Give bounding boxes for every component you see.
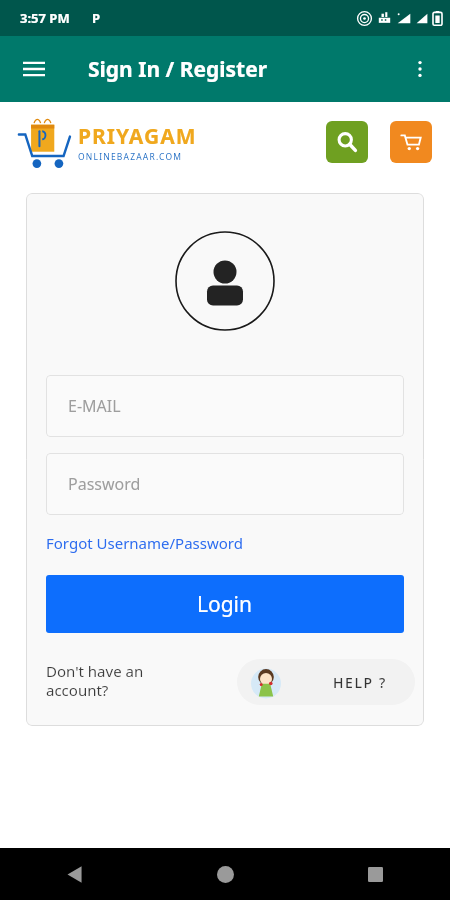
- button[interactable]: More options: [398, 47, 442, 91]
- button[interactable]: Create new Account: [263, 661, 404, 681]
- staticText: Sign In / Register: [88, 55, 268, 84]
- staticText: Password: [68, 473, 141, 495]
- staticText: E-MAIL: [68, 395, 121, 417]
- button[interactable]: Cart: [390, 121, 432, 163]
- button[interactable]: Search: [326, 121, 368, 163]
- button[interactable]: PRIYAGAM: [16, 115, 197, 169]
- staticText: 3:57 PM: [20, 9, 70, 27]
- button[interactable]: Recent apps: [300, 848, 450, 900]
- button[interactable]: Back: [0, 848, 150, 900]
- button[interactable]: HELP ?: [237, 659, 415, 705]
- button[interactable]: E-MAIL: [46, 375, 404, 437]
- staticText: P: [92, 9, 101, 27]
- staticText: ONLINEBAZAAR.COM: [78, 151, 183, 163]
- button[interactable]: Open navigation menu: [12, 47, 56, 91]
- button[interactable]: Login: [46, 575, 404, 633]
- button[interactable]: Home: [150, 848, 300, 900]
- staticText: Login: [197, 590, 253, 619]
- staticText: PRIYAGAM: [78, 122, 197, 151]
- staticText: Don't have an account?: [46, 661, 166, 700]
- button[interactable]: Password: [46, 453, 404, 515]
- staticText: HELP ?: [333, 673, 387, 692]
- button[interactable]: Forgot Username/Password: [46, 533, 243, 553]
